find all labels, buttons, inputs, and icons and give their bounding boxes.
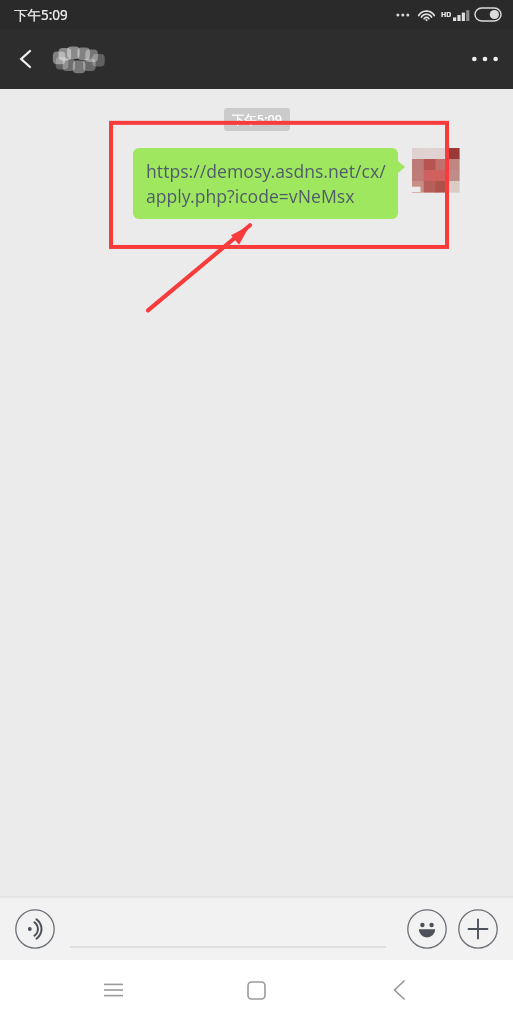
button[interactable]: More options	[457, 31, 513, 87]
staticText: 下午5:09	[14, 6, 68, 24]
staticText: 下午5:09	[232, 111, 282, 128]
button[interactable]: Home	[232, 966, 280, 1014]
staticText: HD	[441, 10, 452, 20]
button[interactable]: More functions	[456, 907, 500, 951]
button[interactable]: Recents	[89, 966, 137, 1014]
button[interactable]: Back	[375, 966, 423, 1014]
button[interactable]: Voice message	[12, 906, 58, 952]
other: Contact avatar	[412, 148, 459, 192]
button[interactable]: https://demosy.asdns.net/cx/ apply.php?i…	[133, 148, 405, 219]
button[interactable]: Emoji	[405, 907, 449, 951]
button[interactable]: Back	[0, 33, 52, 85]
staticText: https://demosy.asdns.net/cx/ apply.php?i…	[146, 159, 386, 208]
button[interactable]	[70, 928, 386, 948]
